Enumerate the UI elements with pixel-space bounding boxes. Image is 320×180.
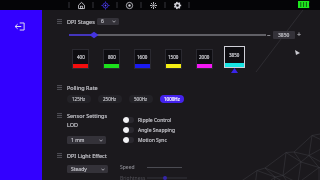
staticText: 1600 bbox=[137, 54, 148, 60]
button[interactable]: Speed slider bbox=[147, 164, 182, 171]
button[interactable]: Sensor Settings bbox=[57, 112, 108, 119]
staticText: 125Hz bbox=[72, 96, 86, 102]
staticText: 1 mm bbox=[71, 137, 85, 144]
staticText: LOD bbox=[67, 121, 79, 128]
staticText: 400 bbox=[77, 54, 85, 60]
staticText: 250Hz bbox=[103, 96, 117, 102]
staticText: 1500 bbox=[168, 54, 179, 60]
button[interactable]: 1000Hz bbox=[160, 95, 184, 103]
button[interactable]: 3850 bbox=[224, 46, 245, 68]
button[interactable]: Lighting bbox=[147, 0, 159, 10]
button[interactable]: Brightness slider bbox=[147, 175, 187, 180]
staticText: DPI Stages bbox=[67, 18, 95, 25]
button[interactable]: Home bbox=[75, 0, 87, 10]
staticText: 1000Hz bbox=[164, 96, 180, 102]
button[interactable]: 500Hz bbox=[129, 95, 153, 103]
staticText: Sensor Settings bbox=[67, 112, 108, 119]
button[interactable]: Ripple Control bbox=[123, 116, 172, 124]
staticText: Polling Rate bbox=[67, 84, 98, 91]
button[interactable]: Motion Sync bbox=[123, 136, 167, 144]
button[interactable]: DPI bbox=[99, 0, 111, 10]
button[interactable]: Battery bbox=[298, 1, 311, 8]
button[interactable]: Polling Rate bbox=[57, 84, 98, 91]
button[interactable]: DPI Stages bbox=[57, 18, 95, 25]
button[interactable]: Exit bbox=[10, 17, 28, 35]
button[interactable]: 1600 bbox=[134, 49, 151, 69]
staticText: 2000 bbox=[199, 54, 210, 60]
staticText: Ripple Control bbox=[138, 117, 172, 124]
staticText: 3850 bbox=[229, 52, 240, 58]
staticText: Steady bbox=[71, 166, 87, 173]
button[interactable]: DPI value slider bbox=[69, 31, 266, 39]
button[interactable]: Macro bbox=[123, 0, 135, 10]
staticText: DPI Light Effect bbox=[67, 152, 107, 159]
staticText: Speed bbox=[120, 164, 135, 171]
button[interactable]: 2000 bbox=[196, 49, 213, 69]
staticText: + bbox=[297, 30, 302, 40]
button[interactable]: Angle Snapping bbox=[123, 126, 176, 134]
staticText: Angle Snapping bbox=[138, 127, 176, 134]
button[interactable]: Settings bbox=[171, 0, 183, 10]
button[interactable]: DPI Light Effect bbox=[57, 152, 107, 159]
button[interactable]: 125Hz bbox=[67, 95, 91, 103]
staticText: 6 bbox=[101, 18, 104, 25]
button[interactable]: Steady bbox=[67, 165, 108, 173]
staticText: 800 bbox=[108, 54, 116, 60]
button[interactable]: 800 bbox=[103, 49, 120, 69]
button[interactable]: 1500 bbox=[165, 49, 182, 69]
button[interactable]: 3850 bbox=[273, 31, 295, 39]
staticText: – bbox=[267, 30, 271, 40]
button[interactable]: 6 bbox=[97, 18, 119, 25]
staticText: Motion Sync bbox=[138, 137, 167, 144]
button[interactable]: 250Hz bbox=[98, 95, 122, 103]
button[interactable]: 1 mm bbox=[67, 136, 106, 144]
staticText: 500Hz bbox=[134, 96, 148, 102]
staticText: 3850 bbox=[278, 32, 290, 39]
staticText: Brightness bbox=[120, 175, 146, 180]
button[interactable]: 400 bbox=[72, 49, 89, 69]
